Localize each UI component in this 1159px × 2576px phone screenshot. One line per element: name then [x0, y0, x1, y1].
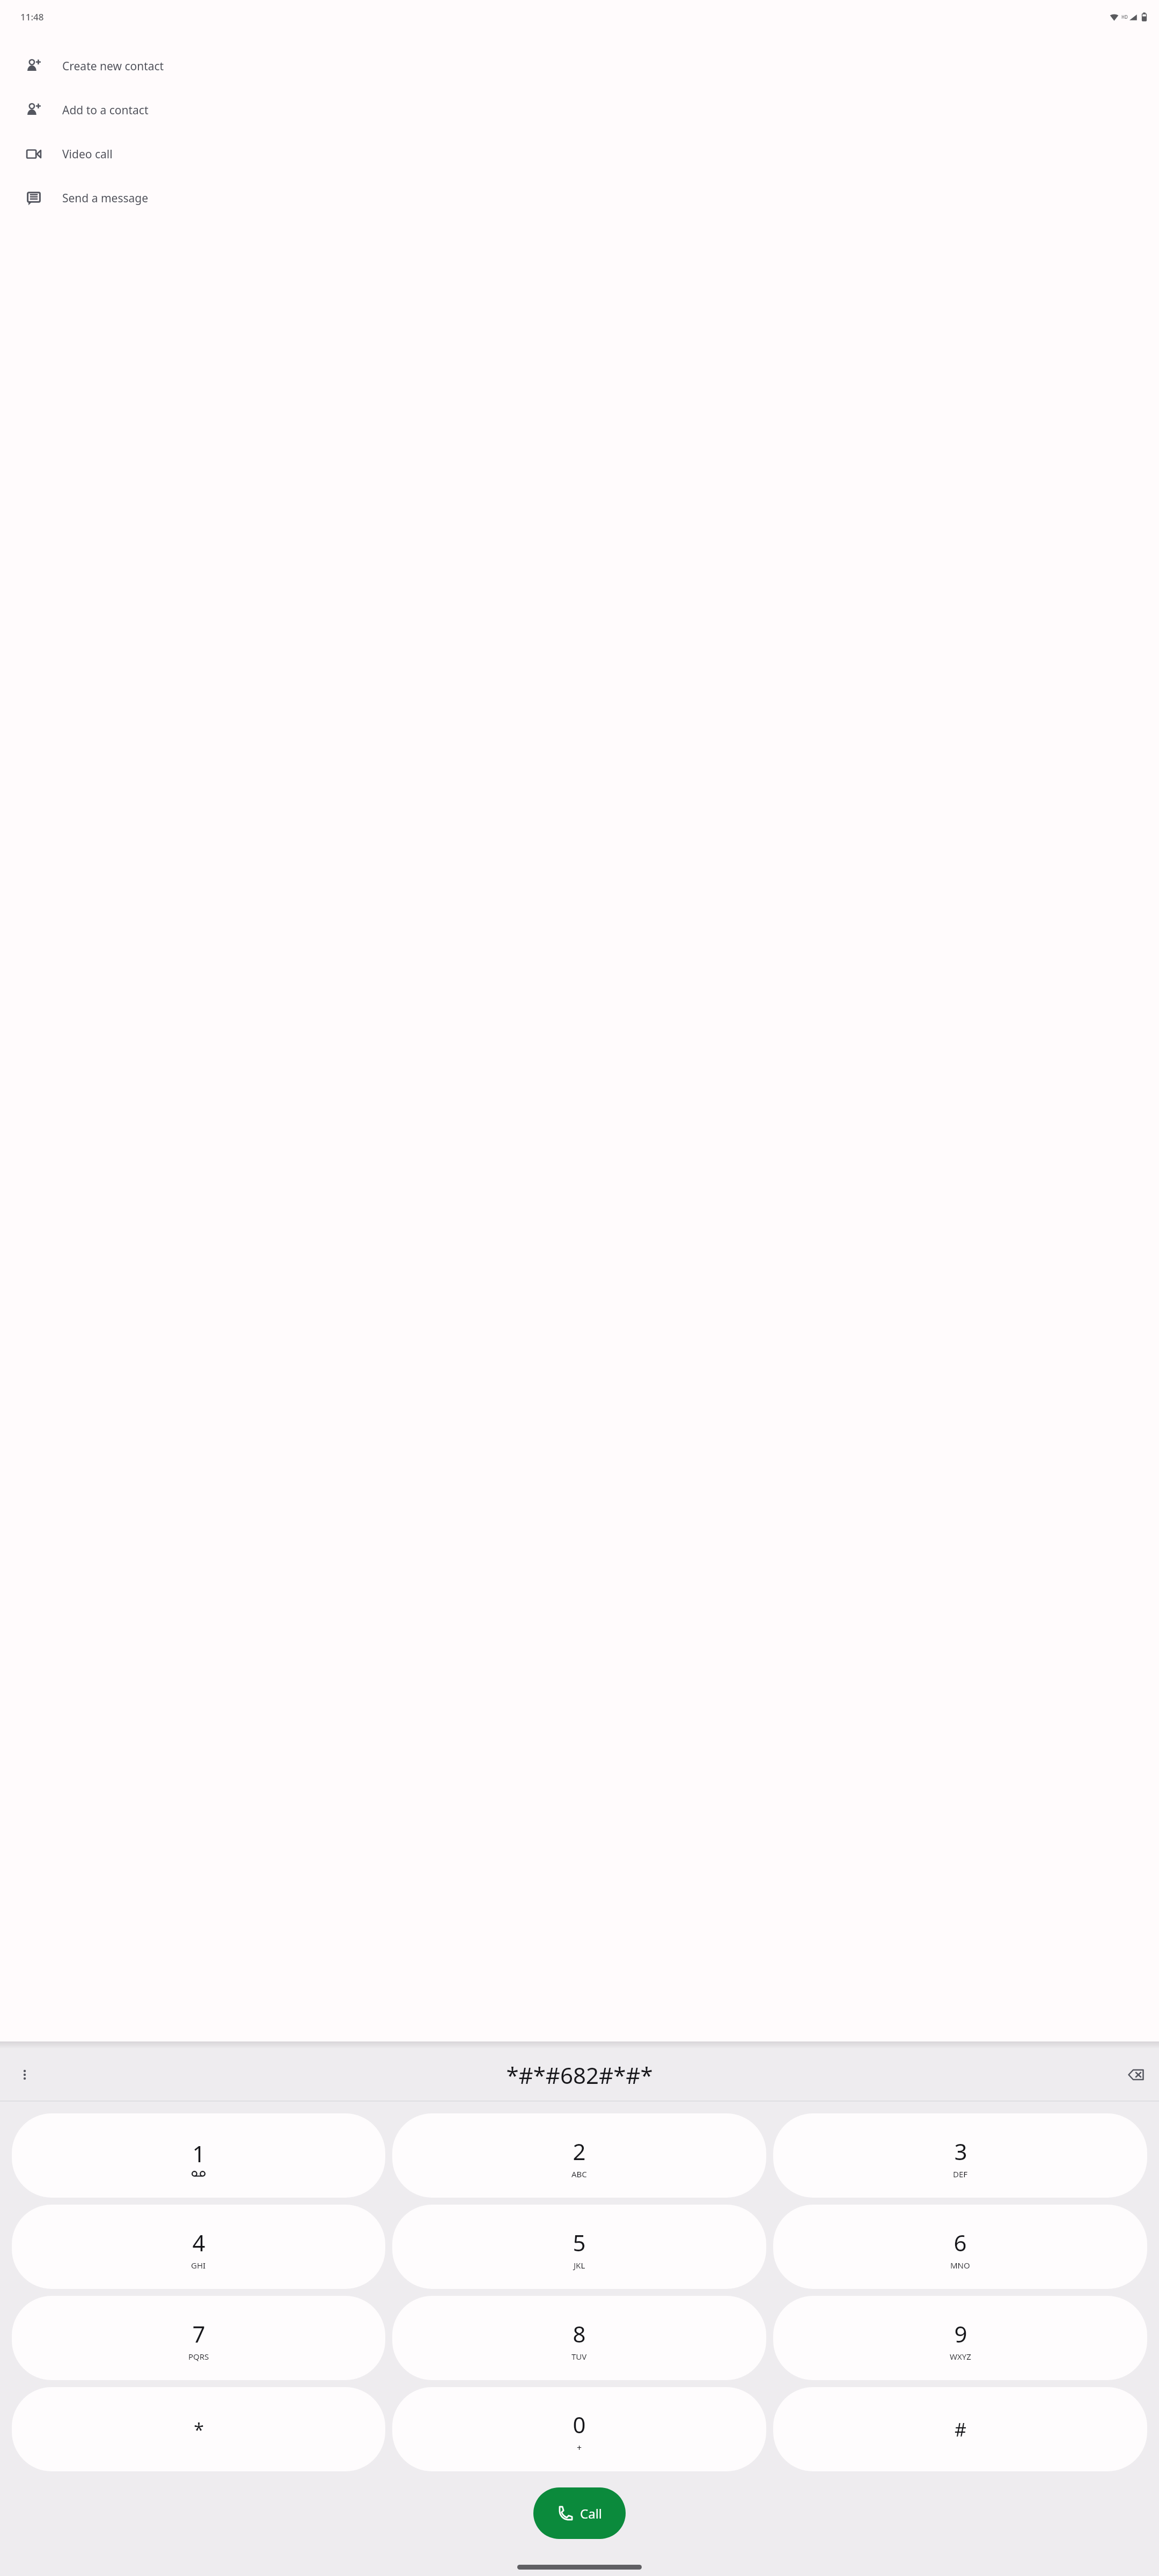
staticText: DEF [953, 2169, 968, 2179]
button[interactable]: Create new contact [0, 44, 1159, 88]
button[interactable]: Backspace [1120, 2059, 1151, 2090]
staticText: PQRS [188, 2351, 209, 2362]
staticText: 5 [573, 2227, 586, 2258]
staticText: MNO [950, 2260, 970, 2271]
button[interactable]: 0 [392, 2387, 766, 2471]
staticText: 8 [573, 2318, 586, 2349]
button[interactable]: More options [11, 2061, 39, 2089]
button[interactable]: Video call [0, 132, 1159, 176]
button[interactable]: Call [533, 2487, 626, 2539]
button[interactable]: 2 [392, 2113, 766, 2198]
staticText: 2 [573, 2136, 586, 2167]
button[interactable]: Add to a contact [0, 88, 1159, 132]
button[interactable]: 3 [773, 2113, 1147, 2198]
button[interactable]: 9 [773, 2296, 1147, 2380]
staticText: 0 [573, 2409, 586, 2440]
staticText: TUV [571, 2351, 587, 2362]
staticText: Send a message [62, 191, 149, 206]
staticText: HD [1121, 14, 1128, 20]
staticText: ABC [571, 2169, 587, 2179]
button[interactable]: 6 [773, 2205, 1147, 2289]
staticText: 3 [954, 2136, 967, 2167]
staticText: 4 [192, 2227, 206, 2258]
staticText: 1 [192, 2138, 206, 2169]
button[interactable]: 5 [392, 2205, 766, 2289]
staticText: Add to a contact [62, 103, 149, 118]
staticText: 7 [192, 2318, 206, 2349]
button[interactable]: 8 [392, 2296, 766, 2380]
button[interactable]: # [773, 2387, 1147, 2471]
staticText: # [955, 2417, 966, 2442]
staticText: Video call [62, 147, 113, 162]
button[interactable]: * [12, 2387, 385, 2471]
staticText: *#*#682#*#* [506, 2060, 653, 2090]
staticText: 9 [954, 2318, 967, 2349]
staticText: 6 [953, 2227, 967, 2258]
staticText: + [577, 2442, 582, 2454]
button[interactable]: 7 [12, 2296, 385, 2380]
staticText: Call [580, 2505, 603, 2522]
staticText: GHI [191, 2260, 206, 2271]
button[interactable]: 4 [12, 2205, 385, 2289]
staticText: * [194, 2417, 204, 2442]
staticText: JKL [574, 2260, 585, 2271]
staticText: WXYZ [950, 2351, 971, 2362]
staticText: Create new contact [62, 58, 164, 74]
button[interactable]: 1 [12, 2113, 385, 2198]
button[interactable]: Send a message [0, 176, 1159, 220]
staticText: 11:48 [20, 11, 44, 23]
